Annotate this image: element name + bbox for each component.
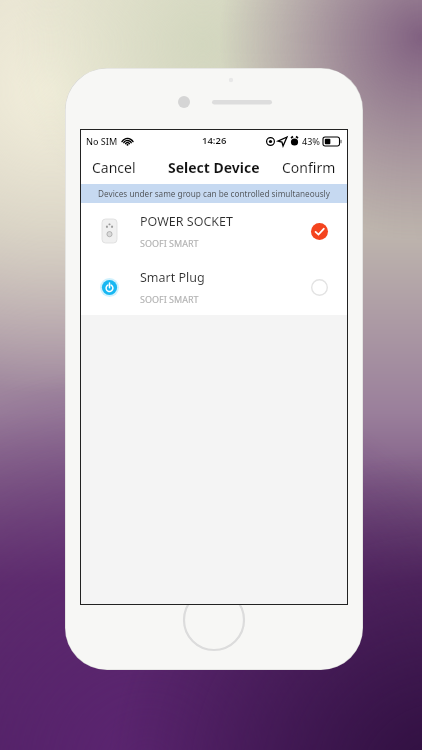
staticText: Confirm <box>282 158 336 177</box>
staticText: POWER SOCKET <box>140 213 233 230</box>
staticText: Cancel <box>92 158 136 177</box>
staticText: 14:26 <box>202 134 227 147</box>
button[interactable]: Selected <box>304 216 334 246</box>
staticText: Select Device <box>168 158 260 177</box>
staticText: SOOFI SMART <box>140 237 199 249</box>
button[interactable]: Confirm <box>271 153 347 182</box>
button[interactable]: Cancel <box>81 153 147 182</box>
staticText: No SIM <box>86 135 118 147</box>
staticText: SOOFI SMART <box>140 293 199 305</box>
button[interactable]: POWER SOCKET <box>81 203 347 259</box>
button[interactable]: Smart Plug <box>81 259 347 315</box>
button[interactable]: Not selected <box>304 272 334 302</box>
staticText: 43% <box>302 135 320 147</box>
staticText: Devices under same group can be controll… <box>98 188 330 199</box>
staticText: Smart Plug <box>140 269 205 286</box>
